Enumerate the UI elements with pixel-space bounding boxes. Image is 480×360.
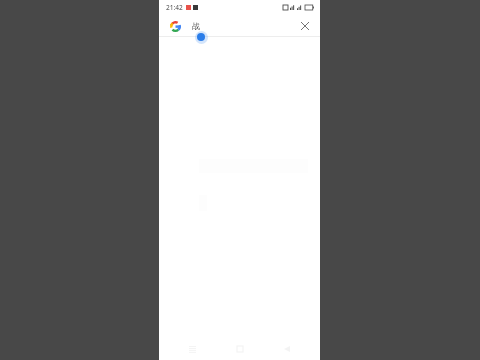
staticText: 战 xyxy=(192,21,200,31)
button[interactable]: Clear search xyxy=(294,15,316,37)
button[interactable]: 战 xyxy=(192,15,294,37)
button[interactable]: Google xyxy=(168,19,182,33)
staticText: 21:42 xyxy=(166,3,183,12)
